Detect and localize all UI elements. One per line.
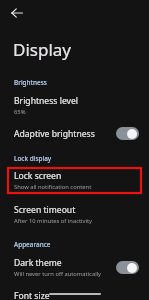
staticText: Brightness — [14, 78, 47, 87]
staticText: Will never turn off automatically — [14, 270, 102, 278]
staticText: Brightness level — [14, 95, 78, 107]
button[interactable]: Back — [5, 1, 29, 25]
staticText: Font size — [14, 290, 50, 299]
button[interactable]: Lock screen — [8, 168, 141, 193]
staticText: After 10 minutes of inactivity — [14, 217, 93, 225]
staticText: 65% — [14, 108, 26, 116]
staticText: Display — [13, 38, 71, 61]
button[interactable]: Toggle setting — [116, 127, 139, 140]
button[interactable]: Toggle setting — [116, 261, 139, 274]
staticText: Dark theme — [14, 257, 62, 269]
button[interactable]: Brightness level — [0, 94, 149, 117]
button[interactable]: Font size — [0, 289, 149, 300]
staticText: Show all notification content — [14, 183, 92, 191]
staticText: Adaptive brightness — [14, 128, 95, 140]
staticText: Lock display — [14, 154, 52, 163]
button[interactable]: Dark theme — [0, 256, 149, 279]
staticText: Appearance — [14, 240, 51, 249]
button[interactable]: Screen timeout — [0, 203, 149, 226]
button[interactable]: Adaptive brightness — [0, 126, 149, 141]
staticText: Screen timeout — [14, 204, 76, 216]
staticText: Lock screen — [14, 170, 62, 182]
